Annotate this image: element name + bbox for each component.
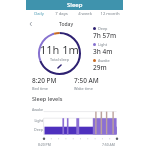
button[interactable]: 12 month [96, 11, 123, 18]
staticText: Sleep levels [32, 95, 63, 102]
button[interactable]: Previous day [27, 20, 35, 28]
staticText: Wake time [74, 86, 93, 91]
staticText: 8:20 PM [38, 142, 51, 147]
staticText: Bed time [32, 86, 48, 91]
staticText: 11h 1m [40, 42, 79, 57]
button[interactable]: Sleep [26, 0, 123, 10]
staticText: Awake [98, 58, 110, 63]
staticText: 29m [93, 63, 107, 72]
staticText: Sleep [67, 1, 83, 9]
staticText: 7:50 AM [102, 142, 115, 147]
staticText: 8:20 PM [32, 76, 57, 85]
button[interactable]: Daily [26, 11, 50, 18]
button[interactable]: 7 days [50, 11, 73, 18]
staticText: Total sleep [50, 57, 70, 62]
staticText: Daily [34, 11, 44, 17]
staticText: Today [59, 21, 74, 28]
staticText: 4 week [78, 11, 92, 17]
staticText: Light [26, 118, 43, 123]
staticText: 7:50 AM [74, 76, 99, 85]
staticText: 7 days [55, 11, 68, 17]
staticText: 12 month [100, 11, 120, 17]
staticText: Deep [98, 26, 108, 31]
staticText: 7h 57m [93, 31, 117, 40]
button[interactable]: Edit sleep [57, 64, 62, 69]
staticText: Deep [26, 127, 43, 132]
staticText: Light [98, 42, 108, 47]
staticText: 3h 4m [93, 47, 113, 56]
button[interactable]: 4 week [73, 11, 96, 18]
staticText: Awake [26, 107, 43, 112]
